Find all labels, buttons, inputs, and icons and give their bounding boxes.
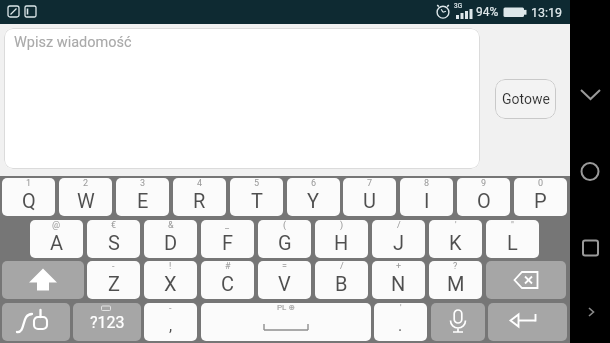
- button[interactable]: (: [258, 220, 311, 258]
- button[interactable]: 2: [59, 178, 112, 216]
- staticText: Q: [22, 189, 36, 212]
- staticText: 8: [424, 178, 430, 189]
- button[interactable]: +: [372, 261, 425, 299]
- button[interactable]: 6: [287, 178, 340, 216]
- staticText: !: [169, 261, 172, 272]
- button[interactable]: ": [486, 220, 539, 258]
- staticText: C: [221, 272, 235, 295]
- staticText: F: [222, 231, 234, 254]
- staticText: ?123: [90, 313, 125, 332]
- staticText: 7: [367, 178, 373, 189]
- button[interactable]: [486, 261, 566, 299]
- button[interactable]: Wpisz wiadomość: [4, 28, 480, 169]
- staticText: O: [477, 189, 491, 212]
- staticText: 9: [481, 178, 487, 189]
- staticText: L: [507, 231, 518, 254]
- button[interactable]: ': [429, 220, 482, 258]
- staticText: G: [278, 231, 292, 254]
- button[interactable]: [2, 261, 84, 299]
- button[interactable]: [570, 225, 610, 265]
- staticText: #: [225, 261, 231, 272]
- staticText: &: [168, 220, 174, 231]
- staticText: =: [282, 261, 287, 272]
- staticText: ": [511, 220, 514, 231]
- button[interactable]: [570, 75, 610, 115]
- staticText: E: [137, 189, 149, 212]
- staticText: -: [112, 261, 115, 272]
- button[interactable]: 3: [116, 178, 169, 216]
- staticText: 13:19: [531, 5, 563, 20]
- staticText: -: [169, 303, 172, 314]
- button[interactable]: [431, 303, 485, 341]
- button[interactable]: @: [30, 220, 83, 258]
- staticText: 94%: [476, 5, 499, 19]
- staticText: A: [50, 231, 64, 254]
- staticText: Gotowe: [502, 91, 550, 107]
- button[interactable]: 7: [343, 178, 396, 216]
- button[interactable]: [570, 297, 610, 327]
- staticText: M: [447, 272, 465, 295]
- staticText: V: [278, 272, 291, 295]
- staticText: 0: [538, 178, 544, 189]
- button[interactable]: =: [258, 261, 311, 299]
- button[interactable]: 4: [173, 178, 226, 216]
- staticText: H: [334, 231, 349, 254]
- button[interactable]: &: [144, 220, 197, 258]
- staticText: ,: [169, 316, 173, 335]
- button[interactable]: #: [201, 261, 254, 299]
- button[interactable]: -: [144, 303, 197, 341]
- staticText: 3G: [454, 2, 463, 10]
- button[interactable]: [488, 303, 567, 341]
- button[interactable]: ': [374, 303, 427, 341]
- button[interactable]: 8: [400, 178, 453, 216]
- staticText: @: [52, 220, 61, 231]
- staticText: Y: [307, 189, 320, 212]
- staticText: ): [340, 220, 344, 231]
- staticText: W: [77, 189, 95, 212]
- staticText: €: [111, 220, 117, 231]
- button[interactable]: Gotowe: [495, 79, 556, 119]
- button[interactable]: !: [144, 261, 197, 299]
- staticText: 3: [140, 178, 146, 189]
- button[interactable]: -: [87, 261, 140, 299]
- button[interactable]: 9: [457, 178, 510, 216]
- staticText: .: [398, 316, 403, 335]
- staticText: 2: [83, 178, 89, 189]
- button[interactable]: ): [315, 220, 368, 258]
- button[interactable]: _: [201, 220, 254, 258]
- button[interactable]: 5: [230, 178, 283, 216]
- button[interactable]: ?123: [73, 303, 141, 341]
- staticText: /: [397, 220, 401, 231]
- button[interactable]: [2, 303, 70, 341]
- button[interactable]: /: [315, 261, 368, 299]
- button[interactable]: /: [372, 220, 425, 258]
- staticText: D: [164, 231, 178, 254]
- staticText: 6: [311, 178, 317, 189]
- button[interactable]: 0: [514, 178, 567, 216]
- staticText: N: [391, 272, 406, 295]
- staticText: _: [225, 220, 230, 231]
- button[interactable]: [570, 151, 610, 191]
- staticText: ': [455, 220, 457, 231]
- button[interactable]: PL ⊕: [201, 303, 371, 341]
- staticText: 4: [197, 178, 203, 189]
- staticText: +: [396, 261, 402, 272]
- staticText: Wpisz wiadomość: [14, 34, 132, 51]
- staticText: T: [251, 189, 263, 212]
- staticText: ?: [453, 261, 458, 272]
- button[interactable]: ?: [429, 261, 482, 299]
- staticText: (: [283, 220, 287, 231]
- staticText: R: [193, 189, 206, 212]
- staticText: X: [164, 272, 177, 295]
- staticText: Z: [108, 272, 120, 295]
- staticText: 1: [26, 178, 32, 189]
- staticText: K: [449, 231, 462, 254]
- staticText: /: [340, 261, 344, 272]
- staticText: I: [424, 189, 430, 212]
- staticText: J: [393, 231, 405, 254]
- staticText: PL ⊕: [277, 303, 296, 312]
- button[interactable]: 1: [2, 178, 55, 216]
- button[interactable]: €: [87, 220, 140, 258]
- staticText: P: [534, 189, 547, 212]
- staticText: U: [363, 189, 376, 212]
